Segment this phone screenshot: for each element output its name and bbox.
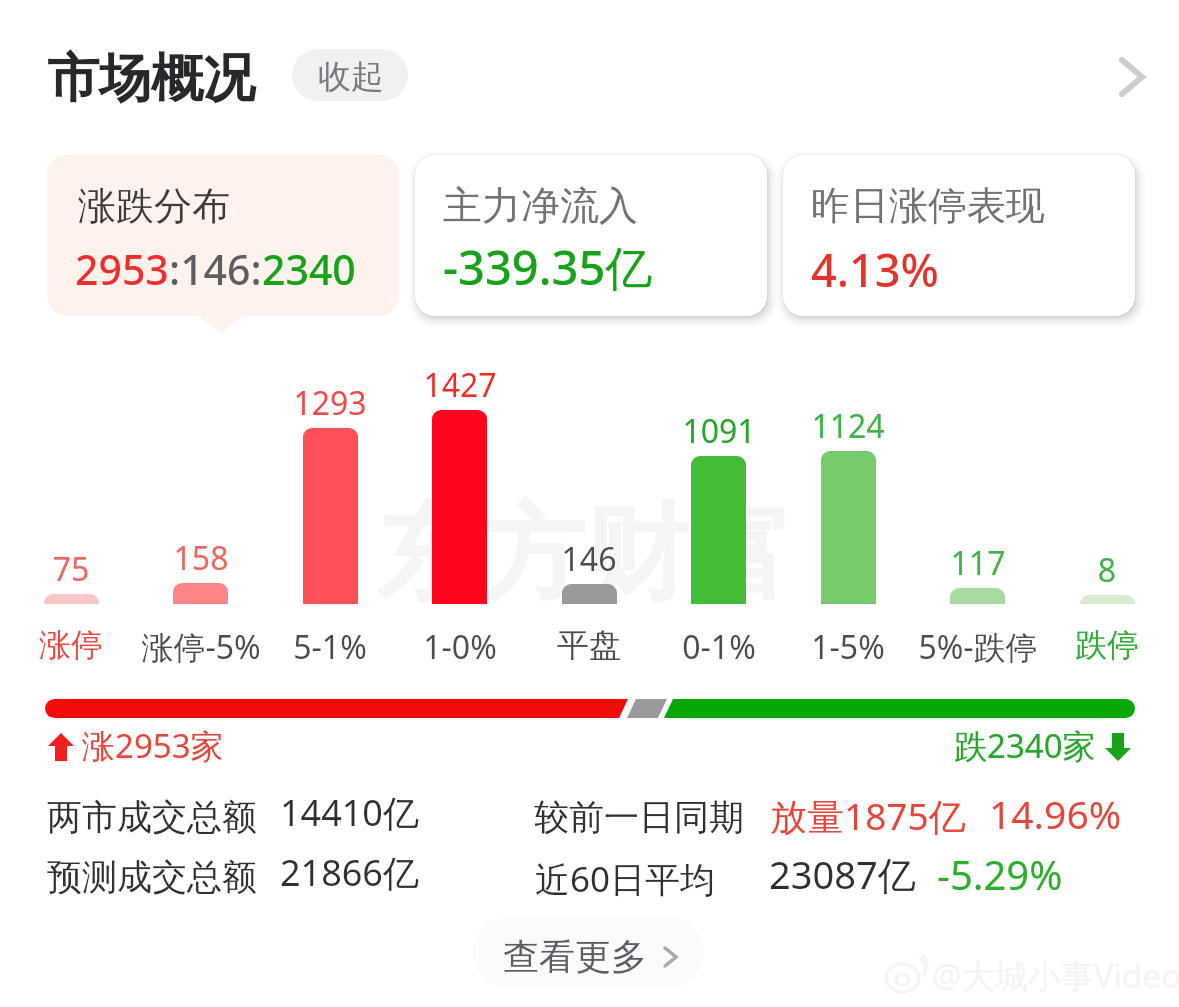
staticText: 158: [121, 536, 281, 580]
staticText: 涨跌分布: [78, 182, 230, 230]
staticText: 14.96%: [989, 787, 1122, 840]
staticText: 4.13%: [811, 239, 939, 300]
staticText: 两市成交总额: [47, 795, 257, 839]
staticText: 跌停: [1022, 625, 1179, 665]
staticText: 5%-跌停: [893, 625, 1063, 669]
staticText: 2953: [75, 241, 169, 297]
button[interactable]: 主力净流入: [415, 155, 767, 316]
button[interactable]: 跌停 8: [1045, 350, 1169, 670]
staticText: 146: [509, 537, 669, 581]
staticText: 1427: [380, 363, 540, 407]
staticText: 预测成交总额: [47, 855, 257, 899]
staticText: -5.29%: [937, 847, 1063, 901]
staticText: 东方财富: [377, 489, 793, 620]
staticText: -339.35亿: [443, 235, 653, 299]
button[interactable]: 平盘 146: [527, 350, 651, 670]
staticText: 21866亿: [280, 848, 419, 897]
staticText: 1-5%: [763, 625, 933, 669]
staticText: :146:: [169, 241, 262, 297]
button[interactable]: 1-0% 1427: [398, 350, 522, 670]
staticText: 涨停: [0, 625, 156, 665]
button[interactable]: 查看更多: [473, 917, 704, 988]
button[interactable]: 涨跌分布: [47, 155, 399, 316]
staticText: 5-1%: [245, 625, 415, 669]
staticText: 1124: [768, 404, 928, 448]
staticText: 涨停-5%: [116, 625, 286, 669]
button[interactable]: 展开详情: [1104, 48, 1164, 108]
staticText: 1091: [639, 409, 799, 453]
staticText: 1293: [250, 381, 410, 425]
button[interactable]: 5-1% 1293: [268, 350, 392, 670]
button[interactable]: 市场概况: [47, 46, 255, 112]
staticText: 涨2953家: [82, 723, 224, 768]
staticText: 8: [1027, 548, 1179, 592]
staticText: 放量1875亿: [770, 790, 966, 841]
staticText: 平盘: [504, 625, 674, 665]
button[interactable]: 昨日涨停表现: [783, 155, 1135, 316]
button[interactable]: 5%-跌停 117: [916, 350, 1040, 670]
staticText: 主力净流入: [443, 181, 638, 230]
button[interactable]: 0-1% 1091: [657, 350, 781, 670]
staticText: 收起: [318, 56, 384, 98]
staticText: 2340: [262, 241, 356, 297]
button[interactable]: 涨停 75: [9, 350, 133, 670]
staticText: 75: [0, 547, 151, 591]
staticText: 昨日涨停表现: [811, 181, 1045, 230]
staticText: 近60日平均: [535, 855, 716, 903]
staticText: 0-1%: [634, 625, 804, 669]
staticText: 较前一日同期: [534, 795, 744, 839]
staticText: @大城小事Video: [932, 953, 1179, 998]
staticText: 23087亿: [769, 848, 916, 900]
staticText: 14410亿: [280, 788, 419, 837]
staticText: 117: [898, 541, 1058, 585]
button[interactable]: 收起: [292, 49, 408, 101]
staticText: 1-0%: [375, 625, 545, 669]
button[interactable]: 1-5% 1124: [786, 350, 910, 670]
staticText: 市场概况: [47, 46, 255, 112]
button[interactable]: 涨停-5% 158: [139, 350, 263, 670]
staticText: 查看更多: [503, 934, 647, 979]
staticText: 跌2340家: [954, 723, 1096, 768]
